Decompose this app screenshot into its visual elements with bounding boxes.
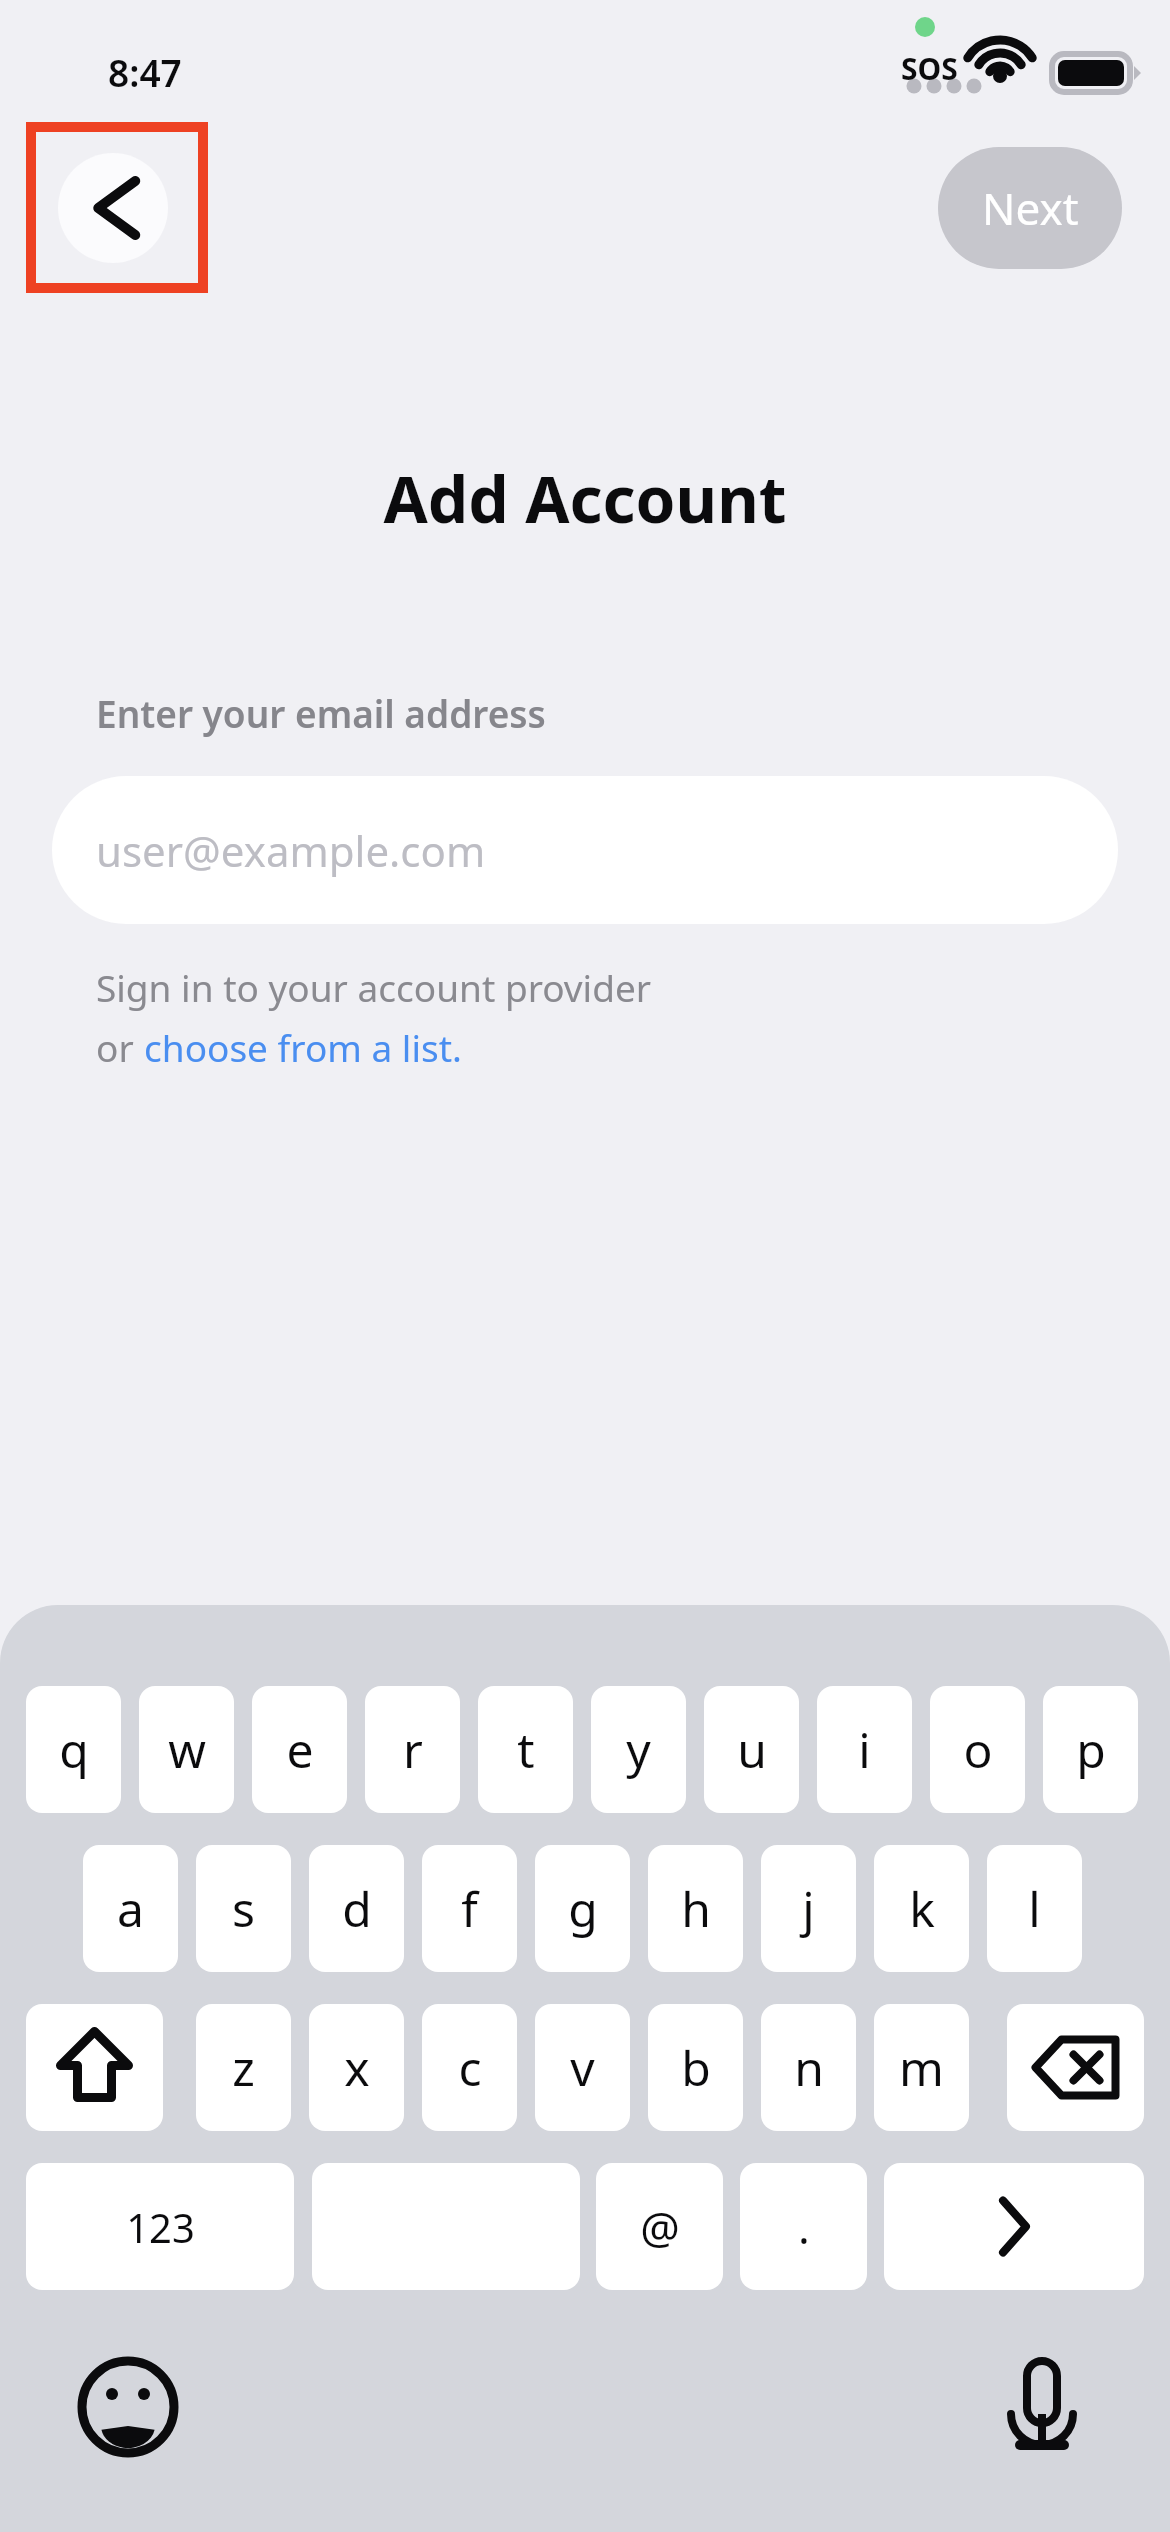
staticText: g [568, 1876, 598, 1941]
staticText: Enter your email address [96, 688, 546, 738]
staticText: 123 [126, 2200, 195, 2254]
staticText: choose from a list. [144, 1022, 462, 1072]
staticText: or [96, 1022, 144, 1072]
staticText: d [342, 1876, 372, 1941]
button[interactable]: user@example.com [52, 776, 1118, 924]
button[interactable]: k [874, 1845, 969, 1972]
button[interactable]: s [196, 1845, 291, 1972]
button[interactable]: g [535, 1845, 630, 1972]
staticText: b [681, 2035, 711, 2100]
staticText: SOS [901, 48, 958, 89]
button[interactable]: Next [938, 147, 1122, 269]
button[interactable]: r [365, 1686, 460, 1813]
button[interactable]: Shift [26, 2004, 163, 2131]
button[interactable]: e [252, 1686, 347, 1813]
staticText: f [461, 1876, 478, 1941]
button[interactable]: n [761, 2004, 856, 2131]
button[interactable]: x [309, 2004, 404, 2131]
staticText: t [517, 1717, 535, 1782]
button[interactable]: choose from a list. [144, 1022, 462, 1072]
staticText: z [232, 2035, 255, 2100]
staticText: r [403, 1717, 423, 1782]
button[interactable]: Emoji [68, 2347, 188, 2467]
staticText: q [59, 1717, 89, 1782]
button[interactable]: m [874, 2004, 969, 2131]
staticText: Next [982, 178, 1079, 238]
button[interactable]: y [591, 1686, 686, 1813]
button[interactable]: p [1043, 1686, 1138, 1813]
button[interactable]: v [535, 2004, 630, 2131]
button[interactable]: . [740, 2163, 867, 2290]
button[interactable]: Back [58, 153, 168, 263]
staticText: y [626, 1717, 651, 1782]
button[interactable]: Dictation [982, 2347, 1102, 2467]
button[interactable]: @ [596, 2163, 723, 2290]
button[interactable]: a [83, 1845, 178, 1972]
staticText: p [1076, 1717, 1106, 1782]
button[interactable]: Go [884, 2163, 1144, 2290]
staticText: e [286, 1717, 314, 1782]
staticText: @ [640, 2197, 680, 2257]
button[interactable]: q [26, 1686, 121, 1813]
staticText: l [1028, 1876, 1041, 1941]
button[interactable]: l [987, 1845, 1082, 1972]
button[interactable]: t [478, 1686, 573, 1813]
button[interactable]: 123 [26, 2163, 294, 2290]
staticText: j [802, 1876, 815, 1941]
button[interactable]: i [817, 1686, 912, 1813]
staticText: user@example.com [96, 822, 486, 879]
staticText: n [794, 2035, 824, 2100]
button[interactable]: f [422, 1845, 517, 1972]
staticText: k [909, 1876, 935, 1941]
staticText: c [458, 2035, 482, 2100]
staticText: i [858, 1717, 871, 1782]
staticText: Sign in to your account provider [96, 962, 652, 1012]
button[interactable]: j [761, 1845, 856, 1972]
staticText: Add Account [383, 455, 787, 542]
button[interactable]: o [930, 1686, 1025, 1813]
staticText: m [899, 2035, 944, 2100]
staticText: h [681, 1876, 711, 1941]
button[interactable]: c [422, 2004, 517, 2131]
button[interactable]: z [196, 2004, 291, 2131]
button[interactable]: w [139, 1686, 234, 1813]
button[interactable]: h [648, 1845, 743, 1972]
staticText: x [344, 2035, 370, 2100]
staticText: 8:47 [108, 47, 182, 97]
staticText: s [232, 1876, 255, 1941]
staticText: u [737, 1717, 767, 1782]
button[interactable]: Space [312, 2163, 580, 2290]
button[interactable]: b [648, 2004, 743, 2131]
staticText: v [570, 2035, 595, 2100]
button[interactable]: Backspace [1007, 2004, 1144, 2131]
staticText: o [963, 1717, 993, 1782]
staticText: a [117, 1876, 144, 1941]
staticText: . [798, 2197, 810, 2257]
staticText: w [168, 1717, 206, 1782]
button[interactable]: d [309, 1845, 404, 1972]
button[interactable]: u [704, 1686, 799, 1813]
